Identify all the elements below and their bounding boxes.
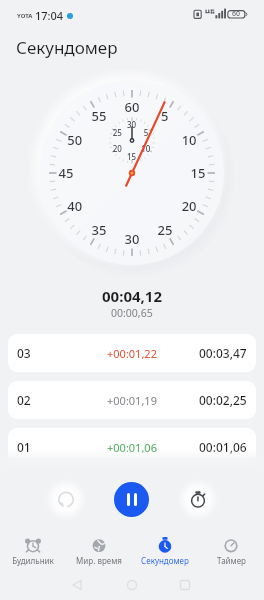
staticText: 00:01,06 [199,439,247,455]
button[interactable]: Pause [114,482,149,517]
button[interactable]: Секундомер [132,533,198,566]
button[interactable]: Reset [44,478,88,522]
staticText: YOTA [17,12,33,20]
staticText: 17:04 [35,8,64,23]
button[interactable]: Lap [176,478,220,522]
staticText: +00:01,19 [107,393,157,408]
staticText: 00:04,12 [102,286,162,306]
staticText: +00:01,22 [107,346,157,361]
button[interactable]: Таймер [198,533,264,566]
button[interactable]: 02 [8,381,256,419]
staticText: 02 [17,392,31,408]
button[interactable]: 03 [8,334,256,372]
button[interactable]: Будильник [0,533,66,566]
staticText: Секундомер [16,36,118,59]
staticText: Таймер [217,555,246,566]
staticText: 60 [232,9,241,19]
staticText: 00:03,47 [199,345,247,361]
staticText: Мир. время [76,555,122,566]
button[interactable]: 01 [8,428,256,466]
staticText: 01 [17,439,31,455]
button[interactable]: Мир. время [66,533,132,566]
staticText: +00:01,06 [107,440,157,455]
staticText: Секундомер [141,555,189,566]
staticText: 03 [17,345,31,361]
staticText: Будильник [12,555,54,566]
staticText: 00:00,65 [111,306,153,320]
staticText: 00:02,25 [199,392,247,408]
